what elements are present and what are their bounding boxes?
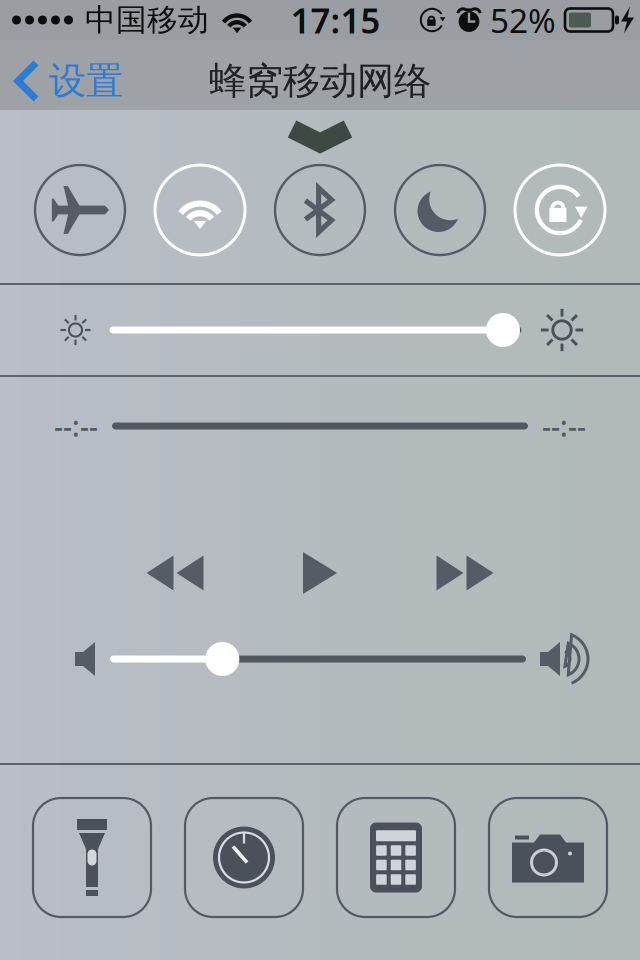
button[interactable]: 蓝牙 bbox=[268, 158, 372, 262]
button[interactable]: 飞行模式 bbox=[28, 158, 132, 262]
button[interactable]: 下一首 bbox=[410, 545, 520, 601]
button[interactable]: 上一首 bbox=[120, 545, 230, 601]
staticText: --:-- bbox=[542, 407, 586, 445]
staticText: 中国移动 bbox=[85, 1, 209, 39]
button[interactable]: 设置 bbox=[0, 38, 133, 112]
button[interactable]: 播放 bbox=[265, 545, 375, 601]
staticText: 17:15 bbox=[290, 0, 380, 43]
staticText: 设置 bbox=[49, 58, 123, 104]
staticText: 52% bbox=[490, 0, 556, 42]
button[interactable]: 勿扰模式 bbox=[388, 158, 492, 262]
button[interactable]: 旋转锁定 bbox=[508, 158, 612, 262]
button[interactable]: 手电筒 bbox=[33, 798, 151, 917]
button[interactable]: 计算器 bbox=[337, 798, 455, 917]
button[interactable]: 计时器 bbox=[185, 798, 303, 917]
staticText: --:-- bbox=[54, 407, 98, 445]
button[interactable]: 无线局域网 bbox=[148, 158, 252, 262]
staticText: 蜂窝移动网络 bbox=[209, 58, 431, 104]
button[interactable]: 相机 bbox=[489, 798, 607, 917]
